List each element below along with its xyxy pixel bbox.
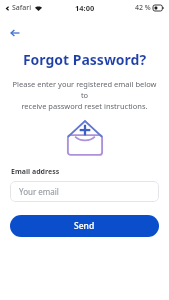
staticText: Safari xyxy=(12,3,32,13)
staticText: Please enter your registered email below… xyxy=(8,79,161,111)
staticText: 14:00 xyxy=(75,3,95,13)
staticText: Send xyxy=(74,220,95,232)
staticText: Your email xyxy=(19,186,59,197)
staticText: Email address xyxy=(11,167,60,177)
button[interactable]: Your email xyxy=(10,181,159,202)
button[interactable]: Send xyxy=(10,215,159,237)
button[interactable]: Back xyxy=(6,24,23,41)
staticText: 42 % xyxy=(135,3,151,13)
staticText: Forgot Password? xyxy=(0,50,169,69)
